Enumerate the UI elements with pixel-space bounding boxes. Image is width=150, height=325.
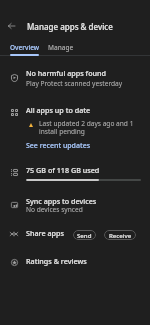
staticText: Receive: [109, 231, 132, 239]
staticText: Last updated 2 days ago and 1 install pe…: [39, 119, 134, 136]
staticText: Overview: [10, 43, 40, 52]
staticText: Ratings & reviews: [26, 256, 87, 266]
button[interactable]: Overview: [4, 38, 45, 56]
staticText: Sync apps to devices: [26, 196, 97, 206]
button[interactable]: Sync apps to devices: [0, 194, 150, 218]
staticText: Send: [77, 231, 92, 239]
button[interactable]: Back: [3, 18, 19, 34]
button[interactable]: Manage: [44, 38, 78, 56]
button[interactable]: See recent updates: [26, 141, 91, 151]
staticText: Share apps: [26, 228, 64, 238]
button[interactable]: Ratings & reviews: [0, 255, 150, 271]
staticText: See recent updates: [26, 141, 91, 151]
button[interactable]: Receive: [104, 230, 136, 240]
staticText: No harmful apps found: [26, 68, 106, 78]
staticText: All apps up to date: [26, 105, 91, 115]
staticText: No devices synced: [26, 205, 83, 214]
button[interactable]: No harmful apps found: [0, 66, 150, 90]
staticText: Manage: [48, 43, 74, 52]
button[interactable]: Send: [73, 230, 96, 240]
staticText: Manage apps & device: [27, 21, 113, 32]
button[interactable]: 75 GB of 118 GB used: [0, 164, 150, 186]
staticText: 75 GB of 118 GB used: [26, 165, 100, 175]
button[interactable]: All apps up to date: [0, 102, 150, 136]
staticText: Play Protect scanned yesterday: [26, 79, 123, 88]
